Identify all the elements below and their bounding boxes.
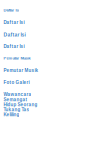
staticText: Wawancara Semangat Hidup Seorang Tukang …: [3, 92, 37, 117]
staticText: Foto Galeri: [3, 80, 29, 85]
staticText: Daftar Isi: [3, 8, 19, 12]
staticText: Daftar Isi: [3, 20, 24, 25]
staticText: Daftar Isi: [3, 44, 24, 49]
staticText: Pemutar Musik: [3, 68, 38, 73]
staticText: Pemutar Musik: [3, 56, 30, 60]
staticText: Daftar Isi: [3, 32, 25, 38]
